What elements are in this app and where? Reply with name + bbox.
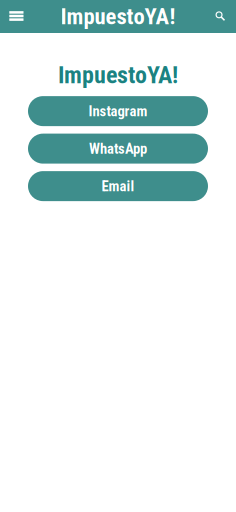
button[interactable]: Search [204,0,236,32]
staticText: WhatsApp [89,140,147,157]
button[interactable]: Email [28,171,208,201]
staticText: Instagram [88,102,147,120]
button[interactable]: Menu [0,0,32,32]
staticText: ImpuestoYA! [60,3,175,30]
staticText: Email [101,177,134,195]
button[interactable]: Instagram [28,96,208,126]
button[interactable]: WhatsApp [28,134,208,164]
staticText: ImpuestoYA! [58,61,178,89]
